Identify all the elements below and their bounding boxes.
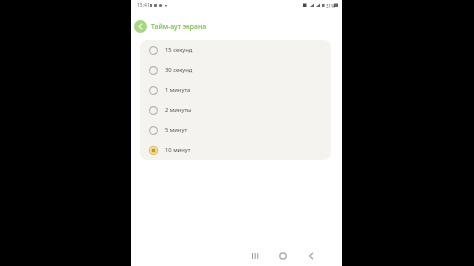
button[interactable]: 15 секунд: [140, 40, 331, 60]
button[interactable]: 5 минут: [140, 120, 331, 140]
staticText: Тайм-аут экрана: [151, 22, 207, 31]
staticText: 15:41: [137, 2, 150, 9]
button[interactable]: 2 минуты: [140, 100, 331, 120]
staticText: 30 секунд: [165, 66, 193, 74]
staticText: 10 минут: [165, 146, 191, 154]
button[interactable]: 10 минут: [140, 140, 331, 160]
staticText: 1 минута: [165, 86, 191, 94]
button[interactable]: [278, 251, 288, 261]
staticText: 2 минуты: [165, 106, 192, 114]
button[interactable]: [306, 251, 316, 261]
staticText: 31%: [326, 3, 335, 9]
staticText: 5 минут: [165, 126, 188, 134]
button[interactable]: 30 секунд: [140, 60, 331, 80]
button[interactable]: [250, 251, 260, 261]
button[interactable]: [134, 20, 147, 33]
staticText: 15 секунд: [165, 46, 193, 54]
button[interactable]: 1 минута: [140, 80, 331, 100]
